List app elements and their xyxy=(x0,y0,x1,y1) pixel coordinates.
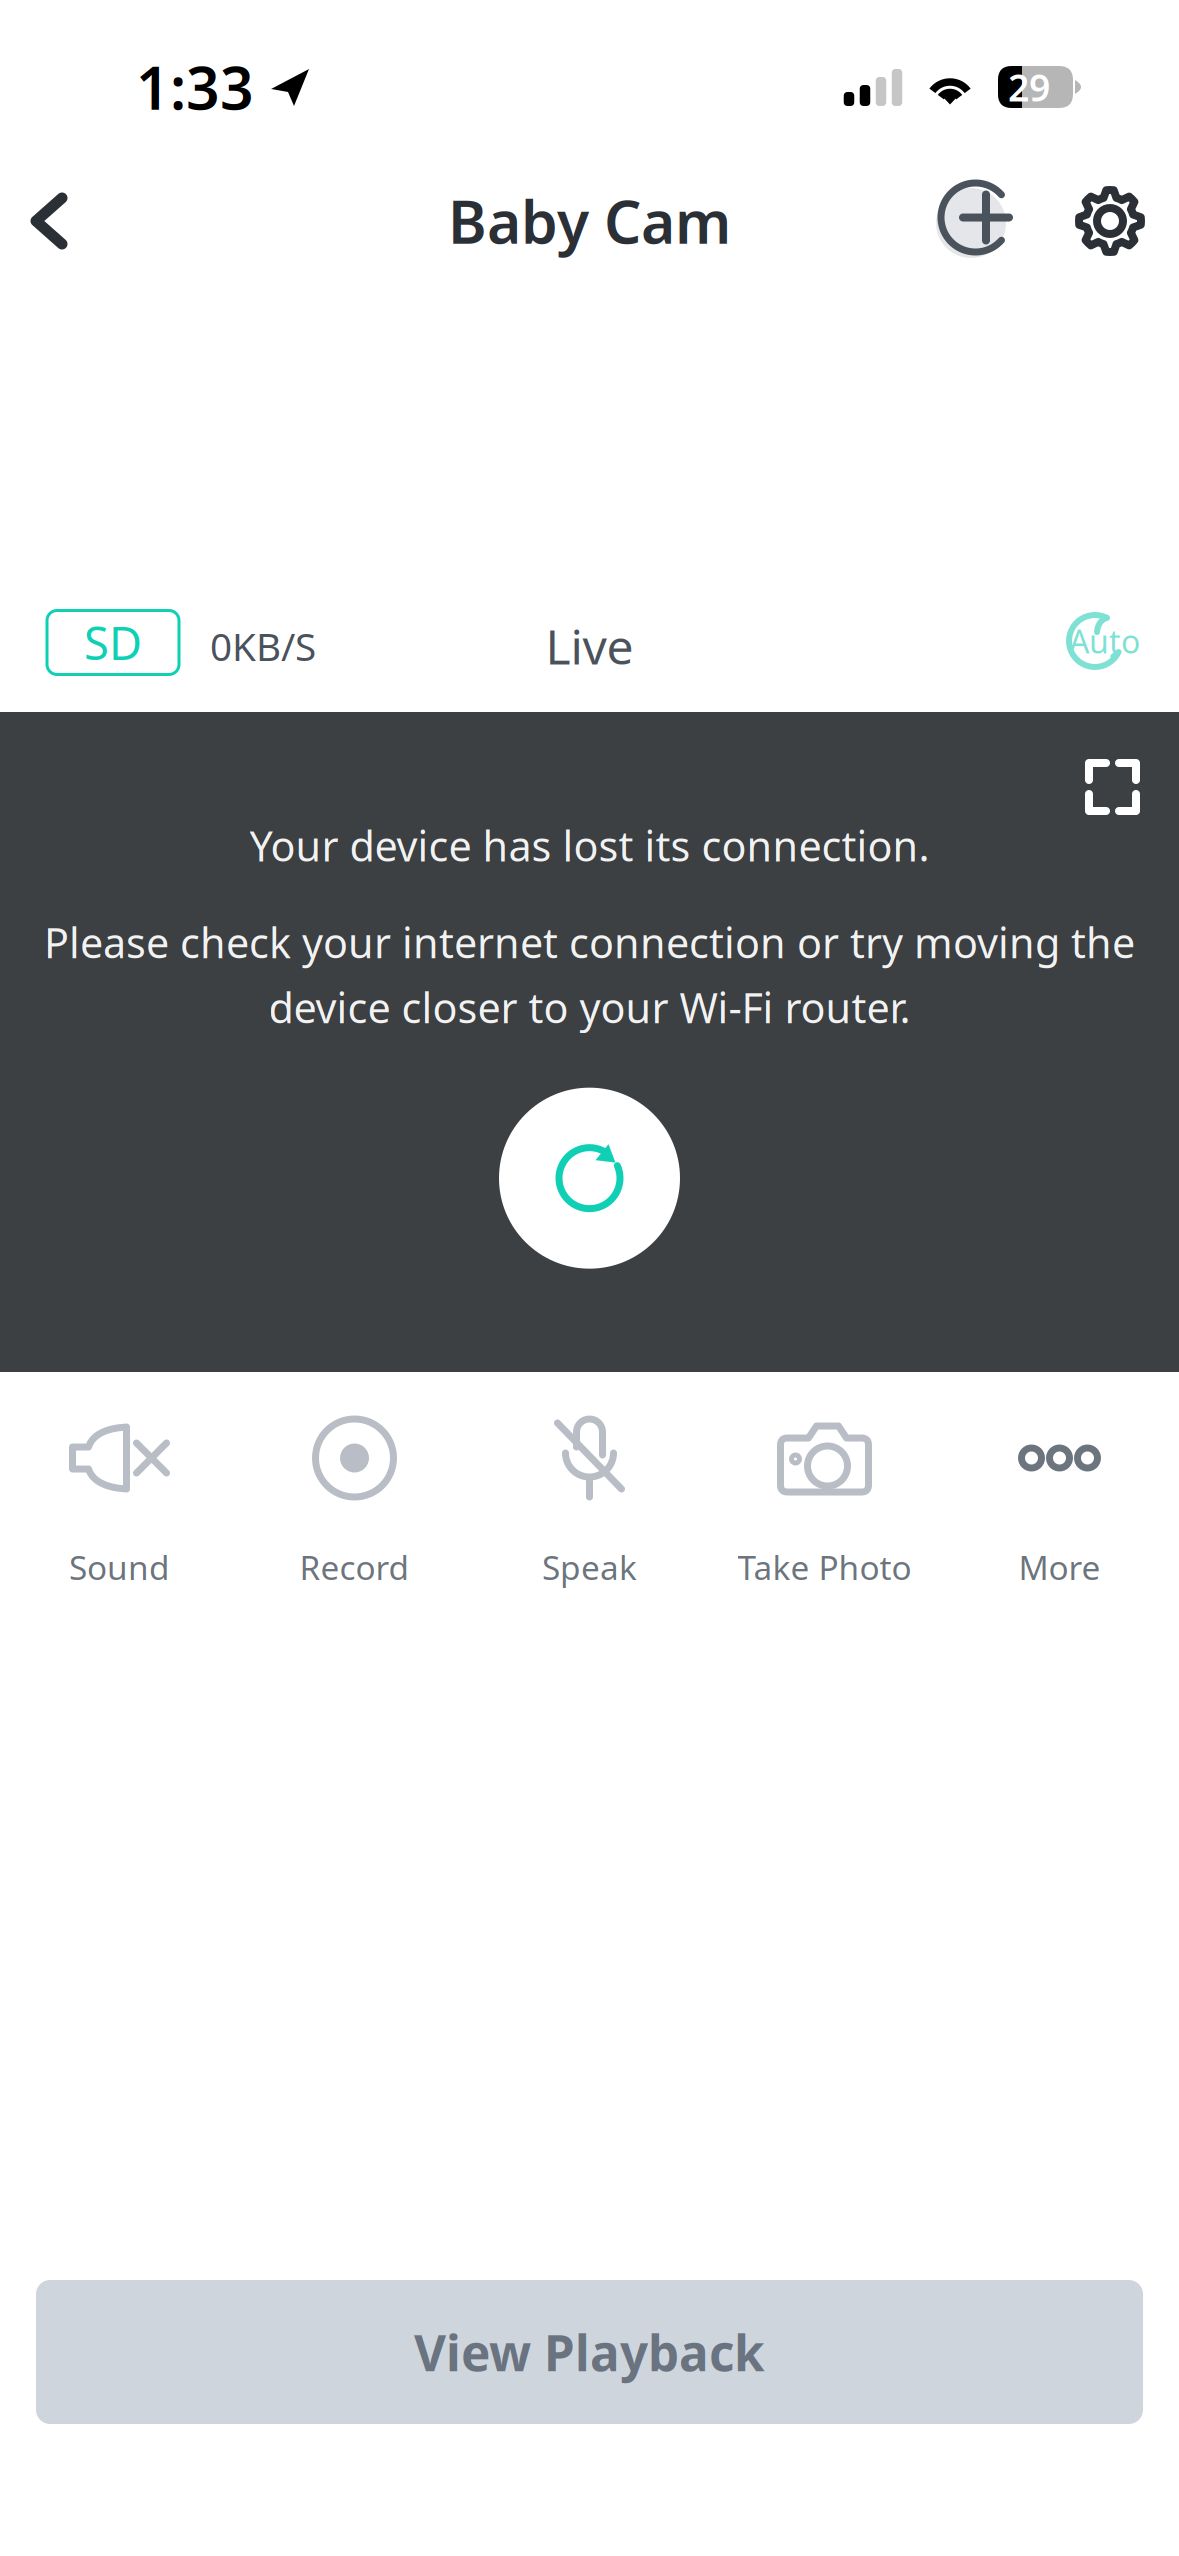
staticText: Please check your internet connection or… xyxy=(44,915,1135,970)
staticText: device closer to your Wi-Fi router. xyxy=(268,980,910,1035)
button[interactable]: SD xyxy=(47,610,179,681)
staticText: Auto xyxy=(1069,620,1140,662)
staticText: SD xyxy=(84,612,142,673)
button[interactable]: Record xyxy=(237,1372,472,1598)
staticText: View Playback xyxy=(414,2319,765,2385)
button[interactable]: Speak xyxy=(472,1372,707,1598)
staticText: Record xyxy=(299,1545,409,1589)
staticText: Speak xyxy=(542,1545,637,1589)
button[interactable]: More xyxy=(942,1372,1177,1598)
staticText: 29 xyxy=(1008,62,1050,112)
staticText: 1:33 xyxy=(136,48,254,126)
staticText: Baby Cam xyxy=(448,182,731,260)
staticText: Sound xyxy=(69,1545,170,1589)
staticText: 0KB/S xyxy=(210,620,316,672)
staticText: Live xyxy=(545,614,633,678)
button[interactable]: Retry xyxy=(499,1088,680,1269)
button[interactable]: Add xyxy=(941,173,1047,269)
button[interactable]: Settings xyxy=(1047,174,1179,268)
button[interactable]: Back xyxy=(0,170,92,272)
button[interactable]: View Playback xyxy=(36,2280,1143,2424)
staticText: Take Photo xyxy=(737,1545,911,1589)
button[interactable]: Take Photo xyxy=(707,1372,942,1598)
button[interactable]: Night mode auto xyxy=(1033,607,1143,685)
staticText: Your device has lost its connection. xyxy=(249,818,929,873)
button[interactable]: Full screen xyxy=(1089,712,1179,811)
button[interactable]: Sound xyxy=(2,1372,237,1598)
staticText: More xyxy=(1018,1545,1100,1589)
